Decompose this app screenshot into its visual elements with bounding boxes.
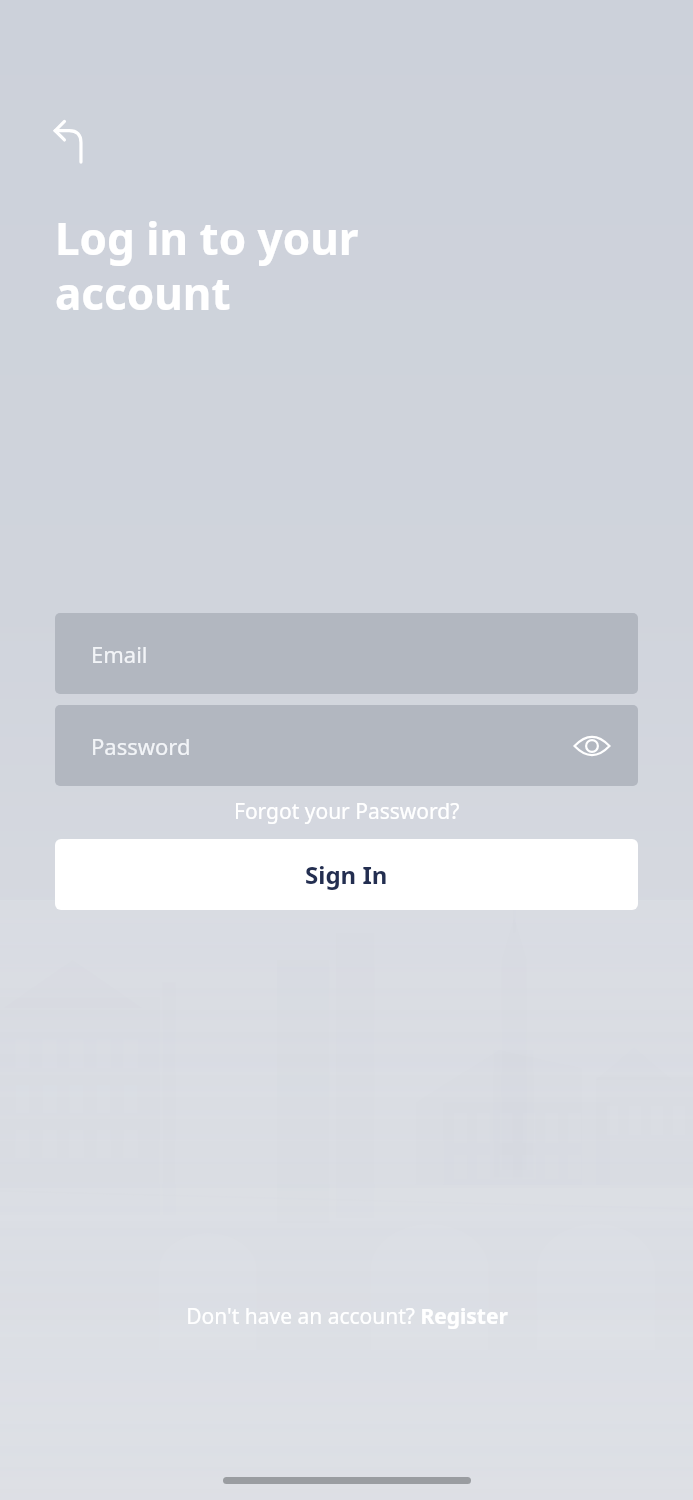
staticText: Email (91, 639, 148, 669)
button[interactable]: Email (55, 613, 638, 694)
button[interactable]: Forgot your Password? (0, 797, 693, 826)
staticText: Don't have an account? Register (186, 1302, 508, 1331)
staticText: Forgot your Password? (234, 797, 460, 826)
button[interactable]: Show password (572, 726, 612, 766)
button[interactable]: Don't have an account? Register (0, 1302, 693, 1331)
button[interactable]: Password (55, 705, 638, 786)
staticText: Password (91, 731, 191, 761)
staticText: Sign In (305, 858, 388, 891)
staticText: Log in to your account (55, 208, 359, 323)
button[interactable]: Sign In (55, 839, 638, 910)
button[interactable]: Back (44, 110, 100, 166)
